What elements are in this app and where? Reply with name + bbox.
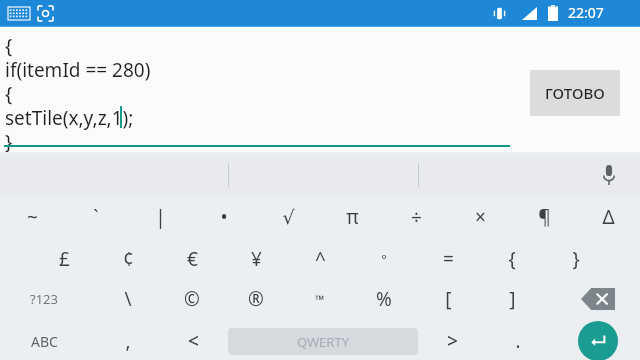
button[interactable]: © bbox=[160, 278, 224, 320]
button[interactable]: < bbox=[161, 320, 225, 360]
staticText: . bbox=[515, 328, 521, 354]
staticText: ¥ bbox=[251, 246, 262, 272]
staticText: ~ bbox=[27, 204, 38, 230]
button[interactable]: ГОТОВО bbox=[530, 70, 620, 116]
staticText: if(itemId == 280) bbox=[5, 57, 151, 83]
staticText: > bbox=[447, 328, 458, 354]
button[interactable]: Δ bbox=[576, 196, 640, 238]
button[interactable]: ° bbox=[352, 238, 416, 280]
staticText: setTile(x,y,z,1); bbox=[5, 105, 134, 131]
staticText: ÷ bbox=[411, 204, 422, 230]
staticText: ™ bbox=[315, 291, 325, 307]
button[interactable]: { bbox=[480, 238, 544, 280]
button[interactable]: π bbox=[320, 196, 384, 238]
button[interactable]: ?123 bbox=[12, 278, 76, 320]
staticText: • bbox=[220, 204, 228, 230]
button[interactable]: Enter bbox=[578, 321, 618, 360]
button[interactable]: ABC bbox=[12, 320, 76, 360]
staticText: < bbox=[188, 328, 199, 354]
staticText: ^ bbox=[315, 246, 326, 272]
button[interactable]: ™ bbox=[288, 278, 352, 320]
staticText: ГОТОВО bbox=[545, 83, 605, 103]
button[interactable]: = bbox=[416, 238, 480, 280]
staticText: ® bbox=[248, 286, 264, 312]
button[interactable]: ` bbox=[64, 196, 128, 238]
staticText: 22:07 bbox=[568, 3, 604, 22]
button[interactable]: ¶ bbox=[512, 196, 576, 238]
staticText: | bbox=[155, 204, 166, 230]
button[interactable]: ] bbox=[480, 278, 544, 320]
staticText: } bbox=[5, 129, 13, 155]
staticText: × bbox=[475, 204, 486, 230]
staticText: [ bbox=[445, 286, 452, 312]
staticText: € bbox=[187, 246, 198, 272]
staticText: } bbox=[572, 246, 580, 272]
button[interactable]: \ bbox=[96, 278, 160, 320]
button[interactable]: > bbox=[420, 320, 484, 360]
staticText: √ bbox=[282, 206, 295, 228]
staticText: Δ bbox=[602, 204, 615, 230]
staticText: { bbox=[5, 33, 13, 59]
other: Keyboard bbox=[8, 7, 30, 20]
staticText: { bbox=[508, 246, 516, 272]
staticText: ` bbox=[93, 204, 99, 230]
staticText: = bbox=[443, 246, 454, 272]
staticText: , bbox=[125, 328, 131, 354]
button[interactable]: √ bbox=[256, 196, 320, 238]
button[interactable]: , bbox=[96, 320, 160, 360]
button[interactable]: € bbox=[160, 238, 224, 280]
button[interactable]: % bbox=[352, 278, 416, 320]
staticText: \ bbox=[124, 286, 132, 312]
staticText: ] bbox=[509, 286, 516, 312]
button[interactable]: ÷ bbox=[384, 196, 448, 238]
staticText: π bbox=[346, 204, 359, 230]
staticText: { bbox=[5, 81, 13, 107]
button[interactable]: Backspace bbox=[568, 280, 628, 318]
button[interactable]: . bbox=[486, 320, 550, 360]
staticText: ?123 bbox=[30, 290, 58, 308]
button[interactable]: } bbox=[544, 238, 608, 280]
button[interactable]: QWERTY bbox=[228, 328, 418, 355]
staticText: ¶ bbox=[538, 204, 551, 230]
staticText: © bbox=[184, 286, 200, 312]
staticText: £ bbox=[59, 246, 70, 272]
other: Screenshot bbox=[38, 6, 53, 21]
staticText: ° bbox=[381, 250, 387, 268]
staticText: ABC bbox=[31, 332, 58, 351]
staticText: QWERTY bbox=[297, 333, 350, 351]
button[interactable]: | bbox=[128, 196, 192, 238]
button[interactable]: [ bbox=[416, 278, 480, 320]
button[interactable]: • bbox=[192, 196, 256, 238]
button[interactable]: × bbox=[448, 196, 512, 238]
button[interactable]: ¢ bbox=[96, 238, 160, 280]
button[interactable]: ~ bbox=[0, 196, 64, 238]
button[interactable]: ¥ bbox=[224, 238, 288, 280]
button[interactable]: Voice input bbox=[592, 158, 626, 192]
button[interactable]: ^ bbox=[288, 238, 352, 280]
staticText: % bbox=[376, 286, 392, 312]
staticText: ¢ bbox=[123, 246, 134, 272]
button[interactable]: £ bbox=[32, 238, 96, 280]
button[interactable]: ® bbox=[224, 278, 288, 320]
